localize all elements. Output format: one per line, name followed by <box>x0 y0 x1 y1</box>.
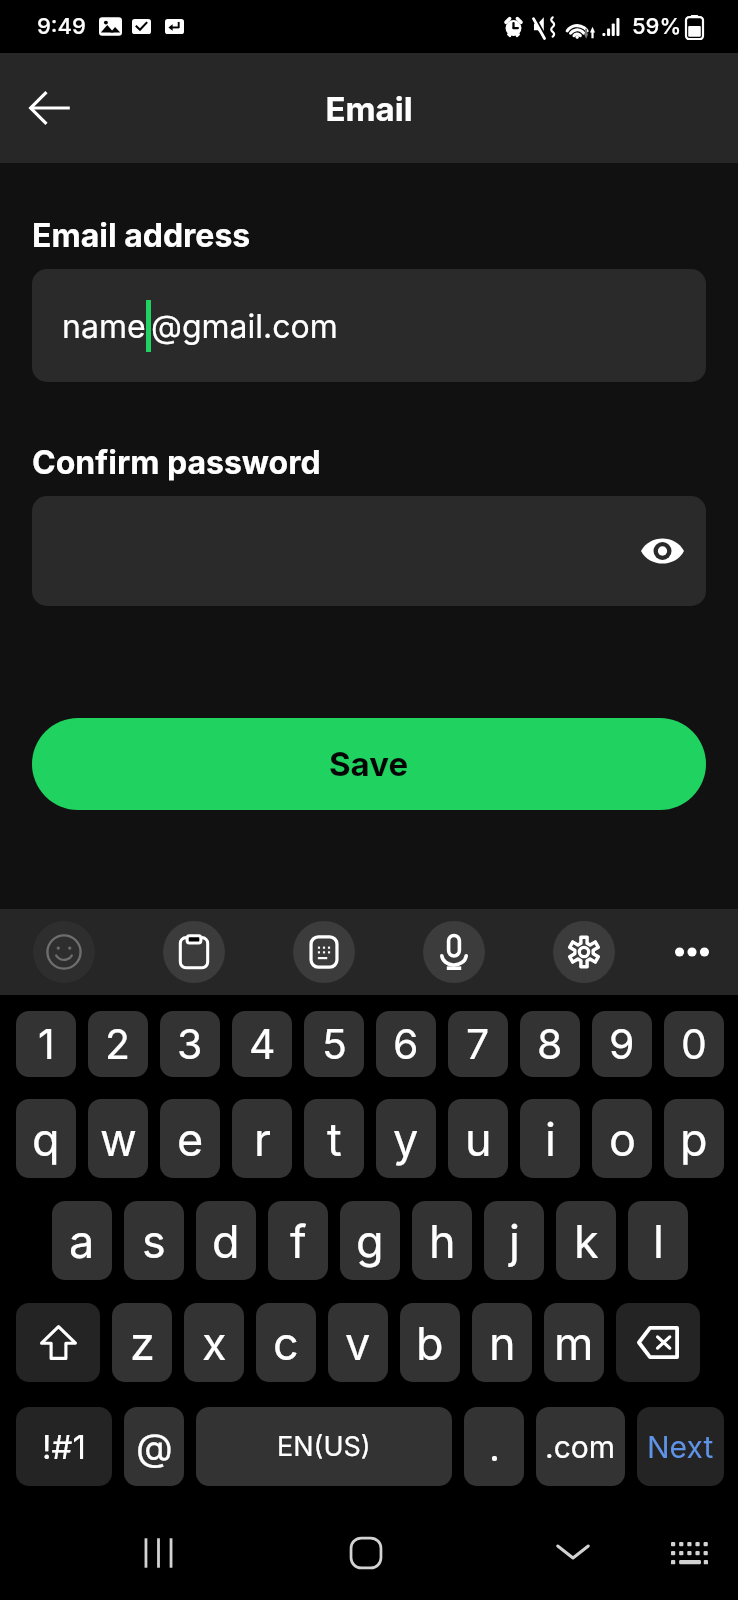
staticText: a <box>69 1214 95 1268</box>
button[interactable]: f <box>268 1201 328 1280</box>
staticText: b <box>416 1316 444 1370</box>
button[interactable]: m <box>544 1303 604 1382</box>
button[interactable]: v <box>328 1303 388 1382</box>
button[interactable]: name <box>32 269 706 382</box>
button[interactable]: 2 <box>88 1011 148 1077</box>
button[interactable]: 4 <box>232 1011 292 1077</box>
button[interactable]: q <box>16 1099 76 1178</box>
button[interactable]: EN(US) <box>196 1407 452 1486</box>
button[interactable]: o <box>592 1099 652 1178</box>
button[interactable]: 0 <box>664 1011 724 1077</box>
staticText: . <box>489 1424 500 1470</box>
button[interactable]: h <box>412 1201 472 1280</box>
button[interactable]: !#1 <box>16 1407 112 1486</box>
staticText: 7 <box>466 1019 490 1069</box>
staticText: 4 <box>249 1019 276 1069</box>
button[interactable]: e <box>160 1099 220 1178</box>
button[interactable]: b <box>400 1303 460 1382</box>
button[interactable]: s <box>124 1201 184 1280</box>
staticText: x <box>202 1316 227 1370</box>
button[interactable]: 1 <box>16 1011 76 1077</box>
button[interactable]: d <box>196 1201 256 1280</box>
staticText: p <box>680 1112 708 1166</box>
button[interactable]: Backspace <box>616 1303 700 1382</box>
staticText: Confirm password <box>32 443 321 482</box>
staticText: EN(US) <box>277 1430 371 1463</box>
button[interactable]: w <box>88 1099 148 1178</box>
staticText: !#1 <box>42 1427 86 1467</box>
staticText: l <box>653 1214 664 1268</box>
staticText: 59% <box>632 13 682 40</box>
button[interactable]: . <box>464 1407 524 1486</box>
button[interactable]: Save <box>32 718 706 810</box>
staticText: .com <box>545 1429 616 1465</box>
staticText: Save <box>329 744 409 784</box>
staticText: s <box>142 1214 166 1268</box>
staticText: e <box>177 1112 204 1166</box>
staticText: f <box>290 1214 307 1268</box>
staticText: c <box>273 1316 299 1370</box>
staticText: 1 <box>38 1019 55 1069</box>
staticText: d <box>212 1214 240 1268</box>
button[interactable]: a <box>52 1201 112 1280</box>
button[interactable]: n <box>472 1303 532 1382</box>
button[interactable]: 5 <box>304 1011 364 1077</box>
staticText: k <box>574 1214 599 1268</box>
staticText: name <box>62 307 146 346</box>
staticText: q <box>32 1112 60 1166</box>
button[interactable]: 3 <box>160 1011 220 1077</box>
button[interactable]: x <box>184 1303 244 1382</box>
button[interactable]: 6 <box>376 1011 436 1077</box>
button[interactable]: Recents <box>0 1486 230 1600</box>
button[interactable]: r <box>232 1099 292 1178</box>
staticText: z <box>130 1316 155 1370</box>
button[interactable]: .com <box>536 1407 625 1486</box>
button[interactable]: j <box>484 1201 544 1280</box>
button[interactable]: i <box>520 1099 580 1178</box>
staticText: 3 <box>177 1019 203 1069</box>
button[interactable]: 8 <box>520 1011 580 1077</box>
button[interactable]: Emoji <box>33 921 95 983</box>
button[interactable]: 9 <box>592 1011 652 1077</box>
button[interactable]: Settings <box>553 921 615 983</box>
button[interactable]: @ <box>124 1407 184 1486</box>
button[interactable]: Shift <box>16 1303 100 1382</box>
staticText: i <box>545 1112 556 1166</box>
button[interactable]: c <box>256 1303 316 1382</box>
staticText: 2 <box>105 1019 131 1069</box>
button[interactable]: y <box>376 1099 436 1178</box>
staticText: 0 <box>681 1019 707 1069</box>
button[interactable]: u <box>448 1099 508 1178</box>
button[interactable]: Hide keyboard <box>501 1486 641 1600</box>
button[interactable]: Keyboard layout <box>293 921 355 983</box>
staticText: n <box>489 1316 516 1370</box>
button[interactable]: Clipboard <box>163 921 225 983</box>
staticText: Next <box>647 1429 714 1465</box>
button[interactable]: Next <box>637 1407 724 1486</box>
button[interactable]: Back <box>14 72 86 144</box>
button[interactable]: k <box>556 1201 616 1280</box>
staticText: o <box>609 1112 636 1166</box>
button[interactable]: More options <box>661 921 723 983</box>
staticText: 9 <box>609 1019 635 1069</box>
staticText: r <box>254 1112 271 1166</box>
button[interactable]: Home <box>296 1486 436 1600</box>
button[interactable]: l <box>628 1201 688 1280</box>
staticText: j <box>509 1214 520 1268</box>
staticText: 8 <box>537 1019 563 1069</box>
button[interactable]: t <box>304 1099 364 1178</box>
staticText: @ <box>136 1424 173 1470</box>
button[interactable]: 7 <box>448 1011 508 1077</box>
button[interactable]: Show password <box>630 519 694 583</box>
button[interactable]: Voice input <box>423 921 485 983</box>
staticText: h <box>429 1214 456 1268</box>
staticText: y <box>393 1112 419 1166</box>
button[interactable]: Change keyboard <box>641 1486 738 1600</box>
staticText: w <box>100 1112 137 1166</box>
button[interactable]: g <box>340 1201 400 1280</box>
button[interactable]: z <box>112 1303 172 1382</box>
button[interactable]: Show password <box>32 496 706 606</box>
staticText: 9:49 <box>37 13 86 40</box>
staticText: Email <box>325 89 413 129</box>
button[interactable]: p <box>664 1099 724 1178</box>
